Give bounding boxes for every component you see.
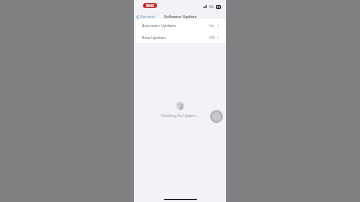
button[interactable]: General	[135, 13, 156, 20]
staticText: Beta Updates	[142, 35, 167, 40]
button[interactable]: Beta Updates	[136, 31, 226, 43]
staticText: Software Update	[164, 14, 197, 19]
staticText: 5G	[209, 4, 214, 9]
staticText: Automatic Updates	[142, 23, 177, 28]
staticText: Off	[209, 35, 215, 40]
staticText: Checking for Update...	[161, 113, 199, 118]
button[interactable]: AssistiveTouch	[210, 110, 223, 123]
staticText: On	[209, 23, 215, 28]
staticText: General	[140, 14, 155, 19]
button[interactable]: Automatic Updates	[136, 19, 226, 31]
staticText: 00:32	[146, 4, 155, 8]
